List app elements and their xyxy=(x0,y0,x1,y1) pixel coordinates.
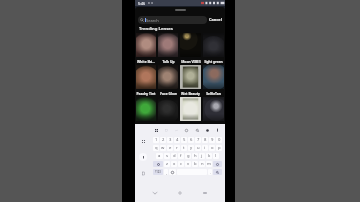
button[interactable]: t xyxy=(181,145,187,151)
staticText: u xyxy=(197,145,200,151)
button[interactable]: Voice input xyxy=(139,153,147,161)
button[interactable]: b xyxy=(192,161,198,167)
button[interactable]: Keyboard tool 0 xyxy=(153,127,159,133)
button[interactable]: Emoji xyxy=(169,169,176,175)
button[interactable]: Green Alien xyxy=(136,97,156,129)
staticText: 5:46 xyxy=(138,1,146,6)
button[interactable]: s xyxy=(164,153,170,159)
button[interactable]: v xyxy=(185,161,191,167)
button[interactable]: Moon VIBES xyxy=(180,33,201,65)
staticText: Talk Up xyxy=(162,59,175,63)
button[interactable]: Cancel xyxy=(209,17,222,22)
button[interactable]: White Skin... xyxy=(136,33,156,65)
staticText: Trending Lenses xyxy=(139,26,173,32)
staticText: 5 xyxy=(183,137,186,143)
button[interactable]: z xyxy=(164,161,170,167)
button[interactable]: Comma xyxy=(164,169,168,175)
button[interactable]: Peachy Tint xyxy=(136,65,156,97)
staticText: 4 xyxy=(176,137,179,143)
staticText: Moon VIBES xyxy=(181,59,201,63)
button[interactable]: 1 xyxy=(153,137,159,143)
button[interactable]: Keyboard tool 1 xyxy=(163,127,169,133)
button[interactable]: 8 xyxy=(202,137,208,143)
button[interactable]: g xyxy=(185,153,191,159)
button[interactable]: Home xyxy=(175,188,185,198)
button[interactable]: ?123 xyxy=(153,169,163,175)
button[interactable]: e xyxy=(167,145,173,151)
button[interactable]: 0 xyxy=(216,137,222,143)
staticText: Green Alien xyxy=(136,123,156,127)
staticText: Dark Art xyxy=(161,123,175,127)
button[interactable]: Back xyxy=(150,188,160,198)
button[interactable]: light green xyxy=(203,33,224,65)
button[interactable]: 2 xyxy=(160,137,166,143)
staticText: Cancel xyxy=(209,17,222,22)
staticText: v xyxy=(187,161,190,167)
button[interactable]: h xyxy=(192,153,198,159)
button[interactable]: l xyxy=(213,153,219,159)
staticText: a xyxy=(158,153,161,159)
staticText: t xyxy=(183,145,185,151)
staticText: h xyxy=(194,153,197,159)
button[interactable]: Search xyxy=(213,169,222,175)
button[interactable]: i xyxy=(202,145,208,151)
button[interactable]: Bamboo xyxy=(180,97,201,129)
button[interactable]: Face Glow xyxy=(158,65,178,97)
button[interactable]: Search xyxy=(138,16,207,24)
button[interactable]: m xyxy=(206,161,212,167)
staticText: y xyxy=(190,145,193,151)
staticText: c xyxy=(180,161,183,167)
button[interactable]: p xyxy=(216,145,222,151)
button[interactable]: r xyxy=(174,145,180,151)
button[interactable]: j xyxy=(199,153,205,159)
staticText: k xyxy=(208,153,211,159)
button[interactable]: d xyxy=(171,153,177,159)
staticText: p xyxy=(218,145,221,151)
button[interactable]: n xyxy=(199,161,205,167)
button[interactable]: Keyboard layout xyxy=(140,138,146,144)
button[interactable]: SelfieTan xyxy=(203,65,224,97)
staticText: j xyxy=(201,153,203,159)
button[interactable]: Talk Up xyxy=(158,33,178,65)
button[interactable]: 7 xyxy=(195,137,201,143)
button[interactable]: Period xyxy=(208,169,212,175)
button[interactable]: y xyxy=(188,145,194,151)
staticText: 7 xyxy=(197,137,200,143)
button[interactable]: c xyxy=(178,161,184,167)
button[interactable]: k xyxy=(206,153,212,159)
button[interactable]: f xyxy=(178,153,184,159)
staticText: Face Glow xyxy=(160,91,177,95)
staticText: q xyxy=(155,145,158,151)
button[interactable]: 9 xyxy=(209,137,215,143)
button[interactable]: Keyboard tool 5 xyxy=(204,127,210,133)
button[interactable]: Keyboard tool 2 xyxy=(173,127,179,133)
button[interactable]: Clipboard xyxy=(140,170,146,176)
button[interactable]: a xyxy=(156,153,163,159)
button[interactable]: Recents xyxy=(200,188,210,198)
button[interactable]: Wet Beauty xyxy=(180,65,201,97)
staticText: Bamboo xyxy=(184,123,198,127)
button[interactable]: Shift xyxy=(153,161,163,167)
button[interactable]: Keyboard tool 3 xyxy=(183,127,189,133)
button[interactable]: q xyxy=(153,145,159,151)
button[interactable]: 3 xyxy=(167,137,173,143)
staticText: White Skin... xyxy=(136,59,156,63)
staticText: ?123 xyxy=(155,170,161,174)
button[interactable]: Keyboard tool 4 xyxy=(194,127,200,133)
staticText: 8 xyxy=(204,137,207,143)
button[interactable]: o xyxy=(209,145,215,151)
staticText: b xyxy=(194,161,197,167)
button[interactable]: Keyboard tool 6 xyxy=(214,127,220,133)
button[interactable]: Snow xyxy=(203,97,224,129)
staticText: d xyxy=(173,153,176,159)
button[interactable]: Dark Art xyxy=(158,97,178,129)
button[interactable]: u xyxy=(195,145,201,151)
staticText: i xyxy=(204,145,206,151)
button[interactable]: 5 xyxy=(181,137,187,143)
button[interactable]: w xyxy=(160,145,166,151)
button[interactable]: Backspace xyxy=(213,161,222,167)
button[interactable]: 4 xyxy=(174,137,180,143)
button[interactable]: 6 xyxy=(188,137,194,143)
button[interactable]: x xyxy=(171,161,177,167)
